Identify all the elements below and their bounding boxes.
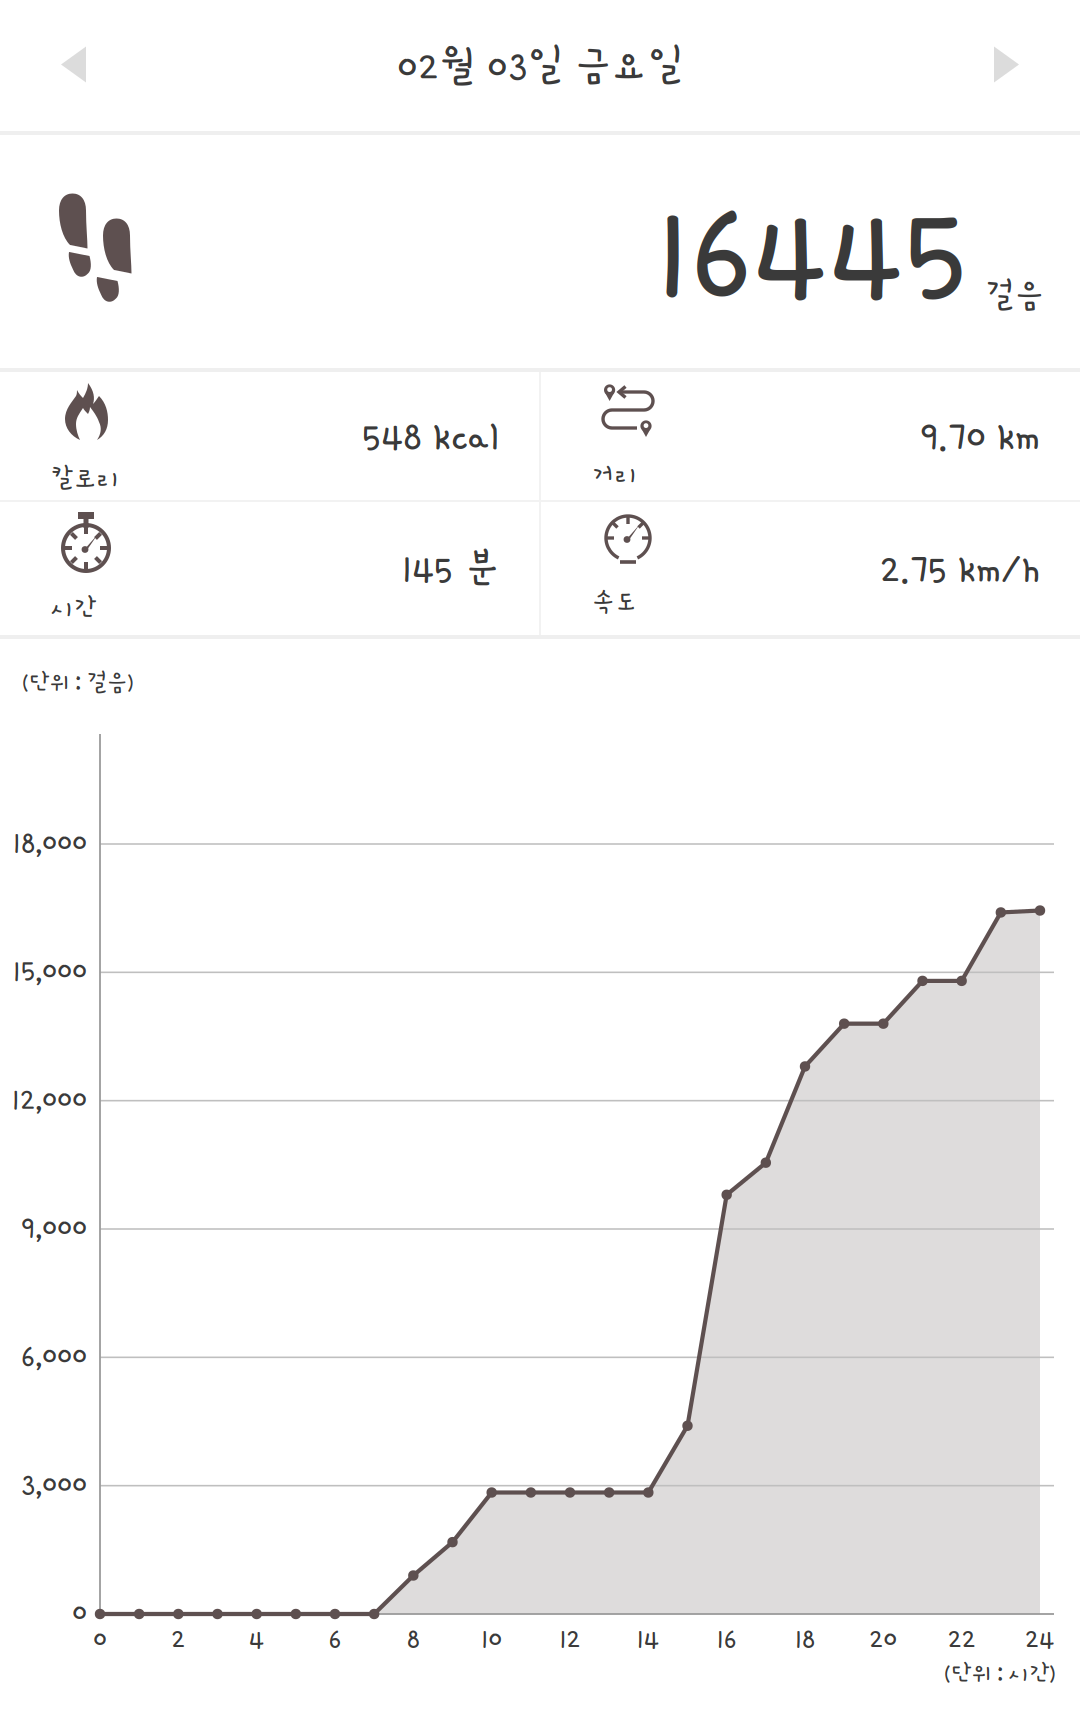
staticText: 18 <box>795 1623 815 1654</box>
staticText: 10 <box>481 1623 502 1654</box>
staticText: 9,000 <box>21 1211 87 1244</box>
staticText: 칼로리 <box>51 464 120 492</box>
staticText: 24 <box>1025 1623 1055 1654</box>
staticText: 145 분 <box>402 546 499 590</box>
staticText: 시간 <box>51 594 97 622</box>
staticText: (단위 : 걸음) <box>22 670 133 695</box>
staticText: 걸음 <box>986 277 1044 313</box>
staticText: 0 <box>72 1596 87 1629</box>
staticText: 2.75 km/h <box>880 546 1040 590</box>
staticText: 2 <box>171 1623 185 1654</box>
staticText: 3,000 <box>21 1468 87 1501</box>
staticText: 거리 <box>592 460 638 488</box>
staticText: 9.70 km <box>920 414 1040 458</box>
staticText: 속도 <box>592 588 638 616</box>
staticText: 22 <box>948 1623 976 1654</box>
staticText: (단위 : 시간) <box>944 1661 1055 1686</box>
staticText: 15,000 <box>13 954 87 988</box>
staticText: 18,000 <box>13 826 87 859</box>
staticText: 16 <box>717 1623 737 1654</box>
staticText: 0 <box>93 1623 107 1654</box>
staticText: 12 <box>559 1623 580 1654</box>
staticText: 6,000 <box>21 1339 87 1373</box>
staticText: 4 <box>249 1623 265 1654</box>
button[interactable]: 이전 날짜 <box>0 0 150 131</box>
staticText: 20 <box>869 1623 897 1654</box>
staticText: 12,000 <box>12 1083 87 1116</box>
staticText: 6 <box>328 1623 341 1654</box>
staticText: 02월 03일 금요일 <box>397 43 683 88</box>
staticText: 16445 <box>656 177 968 326</box>
button[interactable]: 다음 날짜 <box>930 0 1080 131</box>
staticText: 14 <box>637 1623 660 1654</box>
staticText: 8 <box>407 1623 420 1654</box>
staticText: 548 kcal <box>362 414 499 458</box>
